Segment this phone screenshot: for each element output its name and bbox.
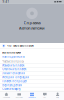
staticText: 9:41: [2, 0, 9, 3]
button[interactable]: Вернуть деньги: [0, 83, 64, 87]
button[interactable]: Ещё: [51, 92, 64, 98]
staticText: Что такое автоплатёж: [7, 44, 34, 47]
button[interactable]: Что такое автоплатёж: [0, 43, 64, 49]
button[interactable]: Частые вопросы: [0, 91, 64, 95]
staticText: История операций: [2, 75, 29, 79]
staticText: Сервисы: [28, 96, 35, 98]
staticText: Автоплатежи: [2, 51, 21, 54]
staticText: Ещё: [56, 96, 59, 98]
staticText: Платежи: [16, 96, 23, 98]
staticText: Автоплатежи: [19, 25, 45, 31]
button[interactable]: Автоплатежи: [0, 49, 64, 60]
staticText: Частые вопросы: [2, 60, 24, 63]
staticText: Сменить карту: [2, 87, 20, 91]
button[interactable]: Лимит списания: [0, 71, 64, 75]
button[interactable]: Изменить платёж: [0, 64, 64, 68]
staticText: Главный: [3, 96, 10, 98]
staticText: Отключить платёж: [2, 68, 26, 71]
staticText: Чат: [43, 96, 46, 98]
staticText: Платёж не прошёл: [2, 79, 27, 83]
button[interactable]: Отключить платёж: [0, 67, 64, 71]
staticText: Как подключить: [2, 55, 24, 58]
staticText: Лимит списания: [2, 71, 25, 75]
staticText: Частые вопросы: [2, 91, 24, 95]
button[interactable]: Сервисы: [26, 92, 38, 98]
staticText: Вернуть деньги: [2, 83, 22, 87]
button[interactable]: Чат: [38, 92, 51, 98]
staticText: Справка: [23, 20, 40, 25]
staticText: Изменить платёж: [2, 64, 24, 67]
button[interactable]: История операций: [0, 75, 64, 79]
button[interactable]: Платежи: [13, 92, 26, 98]
button[interactable]: Платёж не прошёл: [0, 79, 64, 83]
button[interactable]: Сменить карту: [0, 87, 64, 91]
button[interactable]: Главный: [0, 92, 13, 98]
